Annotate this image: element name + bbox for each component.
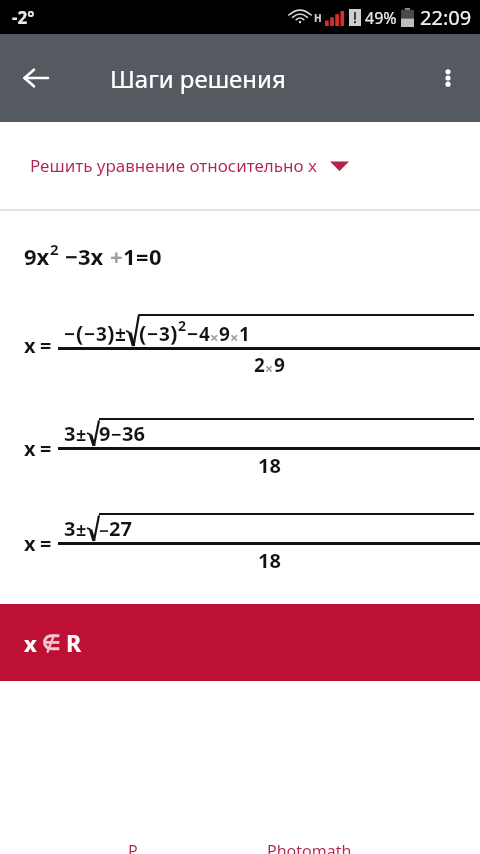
staticText: 27 [109,515,132,542]
staticText: 3 [64,420,76,447]
staticText: + [110,241,123,271]
staticText: 3 [96,321,107,347]
staticText: 0 [149,241,162,271]
staticText: × [210,327,219,347]
staticText: − [111,422,122,447]
staticText: Photomath [267,840,352,854]
staticText: ( [139,317,147,347]
staticText: ± [76,517,87,542]
staticText: × [230,327,239,347]
staticText: ∈ [42,631,61,655]
staticText: x [24,530,36,557]
button[interactable]: Back [8,50,64,106]
staticText: ± [115,321,126,347]
staticText: − [147,321,159,347]
staticText: − [64,321,76,347]
staticText: 2 [254,352,265,378]
staticText: 2 [178,316,187,335]
staticText: 22:09 [420,4,472,31]
staticText: − [65,241,78,271]
staticText: = [136,241,149,271]
button[interactable]: Решить уравнение относительно x [0,122,480,209]
staticText: − [99,519,109,542]
staticText: ± [76,422,87,447]
staticText: = [40,530,52,557]
staticText: x [24,628,37,658]
button[interactable]: x [0,604,480,681]
staticText: 4 [199,321,210,347]
staticText: ) [107,317,115,347]
button[interactable]: More options [422,52,474,104]
staticText: ) [170,317,178,347]
staticText: 9 [274,352,285,378]
staticText: = [40,332,52,359]
staticText: H [314,11,322,25]
staticText: 9x [24,241,50,271]
staticText: Решить уравнение относительно x [30,154,318,177]
staticText: Р [128,840,138,854]
staticText: 1 [123,241,136,271]
staticText: Шаги решения [110,62,286,95]
staticText: 9 [219,321,230,347]
staticText: 1 [239,321,250,347]
staticText: 9 [99,420,111,447]
staticText: 49% [365,7,397,29]
staticText: -2° [12,6,35,29]
staticText: 18 [258,452,281,479]
staticText: 36 [122,420,145,447]
staticText: 18 [258,547,281,574]
staticText: 2 [50,239,59,259]
staticText: ( [76,317,84,347]
staticText: − [84,321,96,347]
staticText: × [265,359,274,378]
staticText: 3x [78,241,104,271]
staticText: x [24,435,36,462]
staticText: 3 [64,515,76,542]
staticText: x [24,332,36,359]
staticText: 3 [159,321,170,347]
staticText: R [66,627,82,658]
staticText: = [40,435,52,462]
staticText: − [187,321,199,347]
